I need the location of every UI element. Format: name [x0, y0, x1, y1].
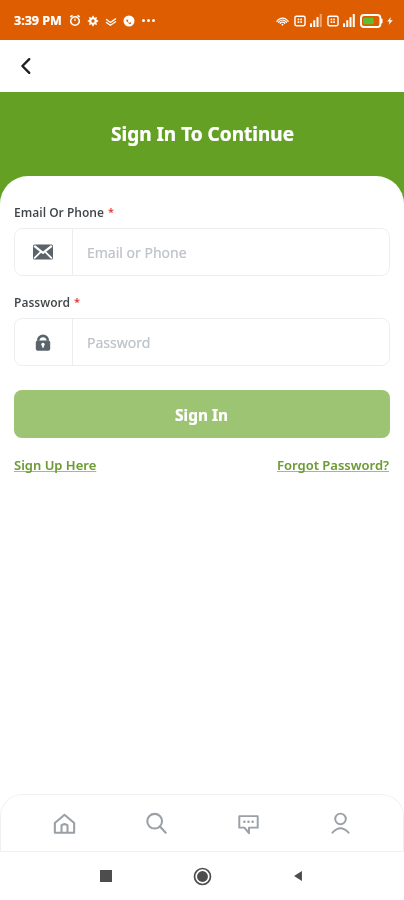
staticText: Password: [14, 294, 71, 310]
button[interactable]: Messages: [212, 797, 284, 849]
button[interactable]: Search: [120, 797, 192, 849]
button[interactable]: Home: [184, 858, 220, 894]
button[interactable]: Forgot Password?: [277, 456, 390, 474]
button[interactable]: Sign Up Here: [14, 456, 97, 474]
staticText: Password: [87, 333, 151, 352]
button[interactable]: Recents: [88, 858, 124, 894]
staticText: Sign Up Here: [14, 456, 97, 474]
staticText: Email Or Phone: [14, 204, 105, 220]
staticText: *: [108, 204, 114, 219]
button[interactable]: Home: [28, 797, 100, 849]
staticText: *: [74, 294, 80, 309]
button[interactable]: Profile: [304, 797, 376, 849]
button[interactable]: Back: [280, 858, 316, 894]
staticText: Sign In: [175, 404, 229, 425]
button[interactable]: Email or Phone: [14, 228, 390, 276]
staticText: Email or Phone: [87, 243, 187, 262]
staticText: Sign In To Continue: [111, 121, 294, 147]
staticText: Forgot Password?: [277, 456, 390, 474]
button[interactable]: Password: [14, 318, 390, 366]
button[interactable]: Sign In: [14, 390, 390, 438]
button[interactable]: Back: [6, 46, 46, 86]
staticText: 3:39 PM: [14, 12, 62, 29]
